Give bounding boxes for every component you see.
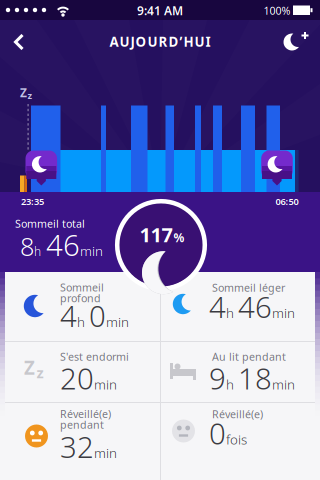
staticText: fois <box>226 430 247 448</box>
staticText: h <box>226 375 234 393</box>
staticText: Z <box>20 84 27 100</box>
staticText: 32 <box>60 427 94 466</box>
staticText: min <box>94 444 117 462</box>
staticText: min <box>272 304 295 322</box>
staticText: 18 <box>238 358 272 397</box>
staticText: 06:50 <box>275 195 298 208</box>
staticText: 9 <box>209 358 226 397</box>
staticText: S'est endormi <box>60 350 129 364</box>
staticText: profond <box>60 291 101 305</box>
staticText: Sommeil léger <box>212 281 285 295</box>
button[interactable]: Add sleep <box>277 24 317 60</box>
staticText: % <box>173 230 184 245</box>
staticText: Réveillé(e) <box>212 407 263 421</box>
staticText: Au lit pendant <box>212 350 286 364</box>
staticText: min <box>106 313 129 331</box>
staticText: z <box>36 363 43 382</box>
staticText: 4 <box>60 296 77 335</box>
staticText: min <box>94 375 117 393</box>
staticText: 117 <box>139 221 172 248</box>
staticText: Z <box>24 355 35 380</box>
staticText: 0 <box>209 413 226 452</box>
staticText: 20 <box>60 358 94 397</box>
staticText: pendant <box>60 417 104 432</box>
staticText: min <box>272 375 295 393</box>
staticText: h <box>226 304 234 322</box>
staticText: 46 <box>238 287 272 326</box>
staticText: h <box>77 313 85 331</box>
staticText: Sommeil <box>60 280 104 294</box>
staticText: h <box>34 243 41 259</box>
staticText: 9:41 AM <box>137 2 183 18</box>
staticText: AUJOURD’HUI <box>109 33 210 50</box>
staticText: 46 <box>46 225 80 264</box>
staticText: 23:35 <box>21 195 44 208</box>
staticText: z <box>27 89 32 102</box>
button[interactable]: Back <box>5 24 35 60</box>
staticText: min <box>80 242 103 260</box>
staticText: 4 <box>209 287 226 326</box>
staticText: 8 <box>20 229 34 263</box>
staticText: Sommeil total <box>15 216 85 231</box>
staticText: 100% <box>263 3 290 18</box>
staticText: Réveillé(e) <box>60 407 111 421</box>
staticText: 0 <box>89 296 106 335</box>
